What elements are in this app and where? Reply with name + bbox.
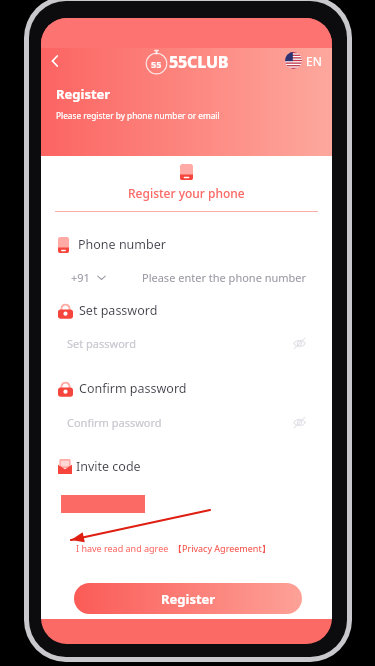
- staticText: Invite code: [76, 458, 141, 475]
- staticText: +91: [71, 270, 90, 285]
- staticText: Confirm password: [67, 415, 162, 430]
- staticText: Register your phone: [128, 185, 245, 201]
- button[interactable]: +91: [55, 260, 318, 294]
- staticText: Phone number: [78, 236, 166, 253]
- staticText: Please enter the phone number: [142, 270, 307, 285]
- staticText: Set password: [67, 336, 136, 351]
- staticText: Confirm password: [79, 380, 187, 397]
- staticText: 【Privacy Agreement】: [173, 542, 271, 554]
- staticText: Register: [56, 85, 111, 103]
- staticText: 55CLUB: [169, 51, 229, 73]
- other: Show password: [293, 337, 306, 350]
- button[interactable]: EN: [285, 52, 322, 69]
- staticText: Register: [161, 590, 216, 608]
- staticText: 55: [151, 58, 162, 70]
- button[interactable]: I have read and agree: [76, 542, 271, 554]
- staticText: I have read and agree: [76, 542, 169, 554]
- staticText: Set password: [79, 302, 158, 319]
- staticText: Please register by phone number or email: [56, 110, 220, 121]
- button[interactable]: Register: [74, 583, 302, 614]
- button[interactable]: Confirm password: [55, 407, 318, 437]
- button[interactable]: Set password: [55, 328, 318, 358]
- button[interactable]: Back: [41, 47, 69, 75]
- staticText: EN: [306, 53, 322, 69]
- other: Show password: [293, 416, 306, 429]
